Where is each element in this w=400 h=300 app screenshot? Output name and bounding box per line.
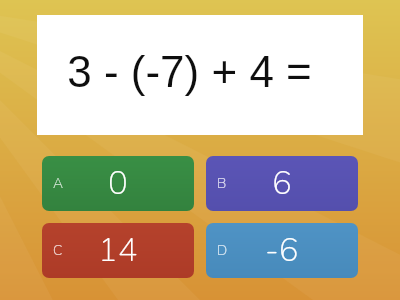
button[interactable]: -6 (206, 223, 358, 278)
staticText: A (53, 174, 64, 193)
staticText: C (53, 241, 63, 260)
staticText: 14 (98, 228, 138, 273)
staticText: 6 (272, 161, 292, 206)
button[interactable]: 0 (42, 156, 194, 211)
staticText: B (217, 174, 227, 193)
button[interactable]: 6 (206, 156, 358, 211)
staticText: -6 (265, 228, 299, 273)
button[interactable]: 14 (42, 223, 194, 278)
staticText: 0 (108, 161, 128, 206)
staticText: 3 - (-7) + 4 = (67, 47, 312, 96)
staticText: D (217, 241, 228, 260)
